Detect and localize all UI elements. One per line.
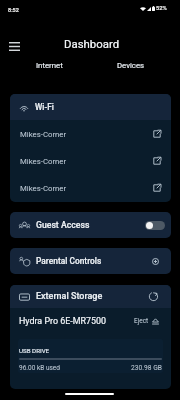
button[interactable]: Parental Controls	[10, 248, 171, 274]
staticText: Wi-Fi	[35, 102, 54, 112]
staticText: Guest Access	[36, 220, 90, 230]
staticText: Dashboard	[64, 37, 120, 50]
button[interactable]: Guest Access	[10, 212, 171, 238]
other: Open network	[152, 129, 162, 139]
button[interactable]: Eject	[134, 317, 159, 325]
staticText: Mikes-Corner	[20, 130, 67, 139]
staticText: Mikes-Corner	[20, 157, 67, 166]
staticText: 52%	[156, 5, 167, 12]
other: Open network	[152, 156, 162, 166]
staticText: Internet	[36, 61, 63, 70]
staticText: 96.00 kB used	[19, 364, 60, 372]
other: Add profile	[152, 258, 159, 265]
staticText: USB DRIVE	[19, 347, 50, 354]
staticText: Eject	[134, 317, 149, 325]
staticText: 8:52	[8, 7, 19, 13]
staticText: Mikes-Corner	[20, 184, 67, 193]
button[interactable]: Refresh	[148, 291, 159, 302]
button[interactable]: Mikes-Corner	[10, 120, 171, 147]
staticText: Parental Controls	[36, 256, 102, 266]
button[interactable]: Internet	[25, 58, 74, 72]
other: Open network	[152, 183, 162, 193]
staticText: Devices	[117, 61, 145, 70]
staticText: 230.98 GB	[131, 364, 162, 372]
button[interactable]: Devices	[106, 58, 155, 72]
staticText: Hydra Pro 6E-MR7500	[19, 316, 106, 326]
button[interactable]: Mikes-Corner	[10, 147, 171, 174]
staticText: External Storage	[36, 291, 103, 302]
button[interactable]: Menu	[4, 36, 24, 56]
button[interactable]: Mikes-Corner	[10, 174, 171, 201]
